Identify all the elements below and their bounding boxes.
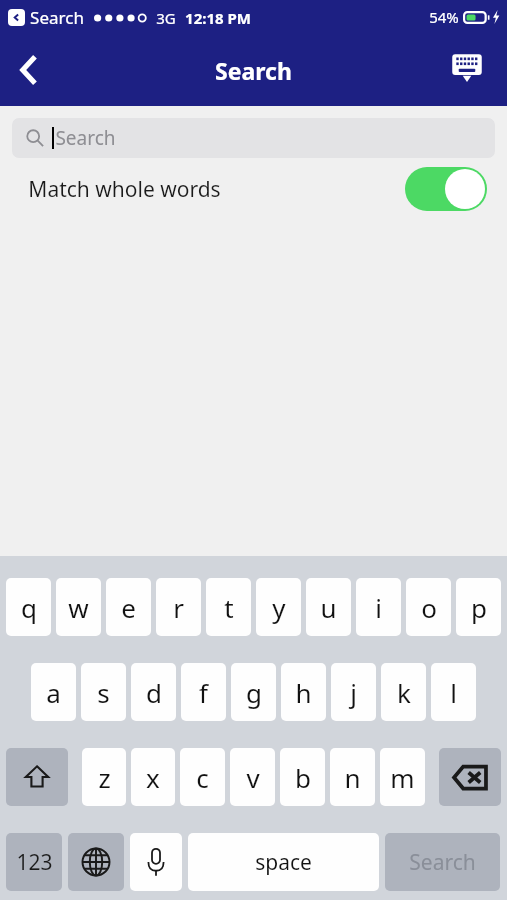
staticText: m	[390, 760, 415, 795]
button[interactable]: t	[206, 578, 251, 636]
staticText: k	[397, 675, 411, 710]
button[interactable]: u	[306, 578, 351, 636]
staticText: p	[471, 590, 487, 625]
staticText: r	[173, 590, 184, 625]
button[interactable]: Search	[385, 833, 500, 891]
staticText: space	[255, 848, 312, 877]
button[interactable]: Change keyboard language	[68, 833, 124, 891]
button[interactable]: d	[131, 663, 176, 721]
button[interactable]: Hide keyboard	[441, 44, 493, 96]
button[interactable]: z	[82, 748, 126, 806]
button[interactable]: Back	[0, 42, 56, 98]
staticText: o	[421, 590, 437, 625]
staticText: h	[295, 675, 312, 710]
staticText: d	[146, 675, 162, 710]
staticText: a	[46, 675, 61, 710]
staticText: u	[320, 590, 337, 625]
button[interactable]: g	[231, 663, 276, 721]
staticText: Search	[55, 125, 116, 151]
button[interactable]: k	[381, 663, 426, 721]
staticText: b	[295, 760, 311, 795]
button[interactable]: p	[456, 578, 501, 636]
button[interactable]: Match whole words toggle, on	[405, 167, 487, 211]
staticText: v	[246, 760, 260, 795]
button[interactable]: h	[281, 663, 326, 721]
button[interactable]: q	[6, 578, 51, 636]
staticText: 54%	[429, 7, 459, 27]
button[interactable]: n	[330, 748, 375, 806]
button[interactable]: i	[356, 578, 401, 636]
staticText: 12:18 PM	[185, 8, 251, 28]
staticText: t	[224, 590, 234, 625]
staticText: z	[98, 760, 111, 795]
button[interactable]: Backspace	[439, 748, 501, 806]
button[interactable]: j	[331, 663, 376, 721]
staticText: e	[121, 590, 136, 625]
staticText: j	[350, 675, 357, 710]
staticText: Search	[30, 6, 84, 29]
button[interactable]: r	[156, 578, 201, 636]
button[interactable]: space	[188, 833, 379, 891]
button[interactable]: Shift	[6, 748, 68, 806]
staticText: c	[196, 760, 209, 795]
staticText: f	[199, 675, 208, 710]
button[interactable]: v	[230, 748, 275, 806]
staticText: x	[146, 760, 160, 795]
button[interactable]: s	[81, 663, 126, 721]
button[interactable]: c	[180, 748, 225, 806]
staticText: 123	[16, 848, 53, 877]
button[interactable]: Search	[12, 118, 495, 158]
button[interactable]: Voice input	[130, 833, 182, 891]
staticText: l	[450, 675, 457, 710]
staticText: w	[68, 590, 89, 625]
button[interactable]: y	[256, 578, 301, 636]
button[interactable]: x	[131, 748, 175, 806]
button[interactable]: e	[106, 578, 151, 636]
staticText: i	[375, 590, 382, 625]
staticText: Search	[215, 55, 292, 86]
staticText: n	[344, 760, 361, 795]
button[interactable]: b	[280, 748, 325, 806]
staticText: s	[97, 675, 110, 710]
button[interactable]: a	[31, 663, 76, 721]
staticText: q	[21, 590, 37, 625]
staticText: Match whole words	[28, 175, 221, 204]
staticText: g	[246, 675, 262, 710]
button[interactable]: o	[406, 578, 451, 636]
button[interactable]: Match whole words	[0, 158, 507, 220]
staticText: y	[272, 590, 286, 625]
button[interactable]: l	[431, 663, 476, 721]
button[interactable]: Back to Search	[8, 9, 25, 26]
staticText: Search	[409, 848, 476, 877]
button[interactable]: f	[181, 663, 226, 721]
button[interactable]: m	[380, 748, 425, 806]
button[interactable]: w	[56, 578, 101, 636]
button[interactable]: 123	[6, 833, 62, 891]
staticText: 3G	[156, 8, 176, 28]
